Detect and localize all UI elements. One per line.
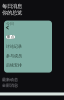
staticText: 你的总览 bbox=[2, 10, 22, 16]
staticText: 每日消息 bbox=[2, 3, 22, 10]
staticText: 今日 bbox=[6, 21, 14, 26]
staticText: 后续安排 bbox=[6, 63, 22, 68]
staticText: 最新动态 bbox=[2, 77, 18, 82]
staticText: 全部消息 bbox=[2, 83, 18, 88]
button[interactable]: Back bbox=[6, 26, 9, 30]
staticText: 重点 bbox=[6, 35, 14, 39]
button[interactable]: 重点 bbox=[6, 35, 15, 39]
staticText: 讨论记录 bbox=[6, 44, 22, 49]
staticText: 参与成员 bbox=[6, 53, 22, 58]
